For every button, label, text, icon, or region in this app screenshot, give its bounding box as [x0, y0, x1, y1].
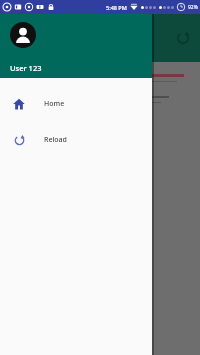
- button[interactable]: Home: [0, 86, 152, 122]
- staticText: 5:48 PM: [106, 4, 127, 11]
- staticText: 92%: [188, 4, 198, 11]
- button[interactable]: Reload: [0, 122, 152, 158]
- staticText: User 123: [10, 63, 42, 73]
- button[interactable]: Refresh: [172, 27, 194, 49]
- staticText: Home: [44, 99, 65, 109]
- staticText: Reload: [44, 135, 67, 145]
